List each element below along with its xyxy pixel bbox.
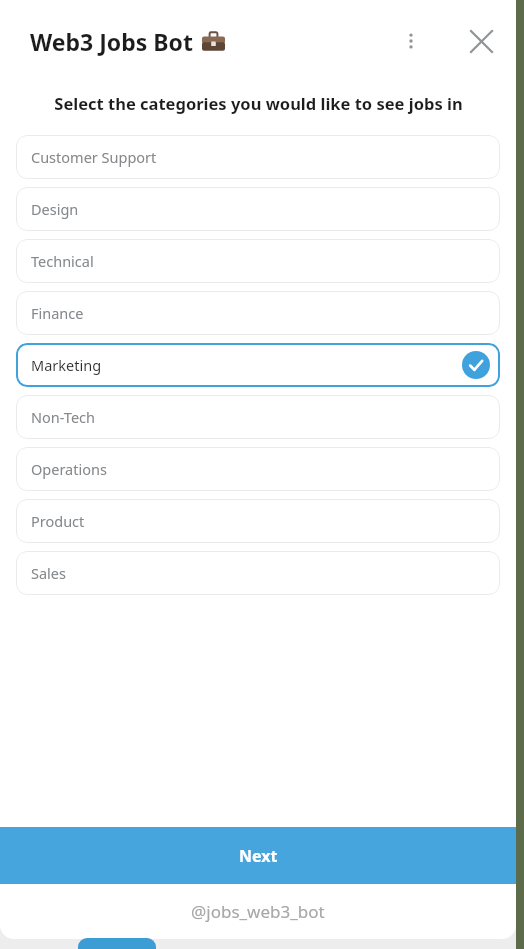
- staticText: Web3 Jobs Bot: [30, 26, 193, 57]
- staticText: Finance: [31, 303, 84, 323]
- button[interactable]: Marketing: [16, 343, 500, 387]
- button[interactable]: Next: [0, 827, 516, 884]
- button[interactable]: Finance: [16, 291, 500, 335]
- button[interactable]: Close: [459, 19, 503, 63]
- button[interactable]: Operations: [16, 447, 500, 491]
- button[interactable]: Design: [16, 187, 500, 231]
- staticText: Marketing: [31, 355, 102, 375]
- staticText: Product: [31, 511, 85, 531]
- button[interactable]: Customer Support: [16, 135, 500, 179]
- staticText: Non-Tech: [31, 407, 95, 427]
- staticText: Select the categories you would like to …: [54, 92, 463, 114]
- button[interactable]: Product: [16, 499, 500, 543]
- button[interactable]: Technical: [16, 239, 500, 283]
- staticText: Sales: [31, 563, 66, 583]
- button[interactable]: More options: [390, 20, 432, 62]
- staticText: Customer Support: [31, 147, 157, 167]
- staticText: Technical: [31, 251, 94, 271]
- staticText: Design: [31, 199, 79, 219]
- staticText: Operations: [31, 459, 107, 479]
- button[interactable]: Non-Tech: [16, 395, 500, 439]
- staticText: Next: [239, 845, 278, 867]
- staticText: @jobs_web3_bot: [191, 900, 325, 923]
- button[interactable]: Sales: [16, 551, 500, 595]
